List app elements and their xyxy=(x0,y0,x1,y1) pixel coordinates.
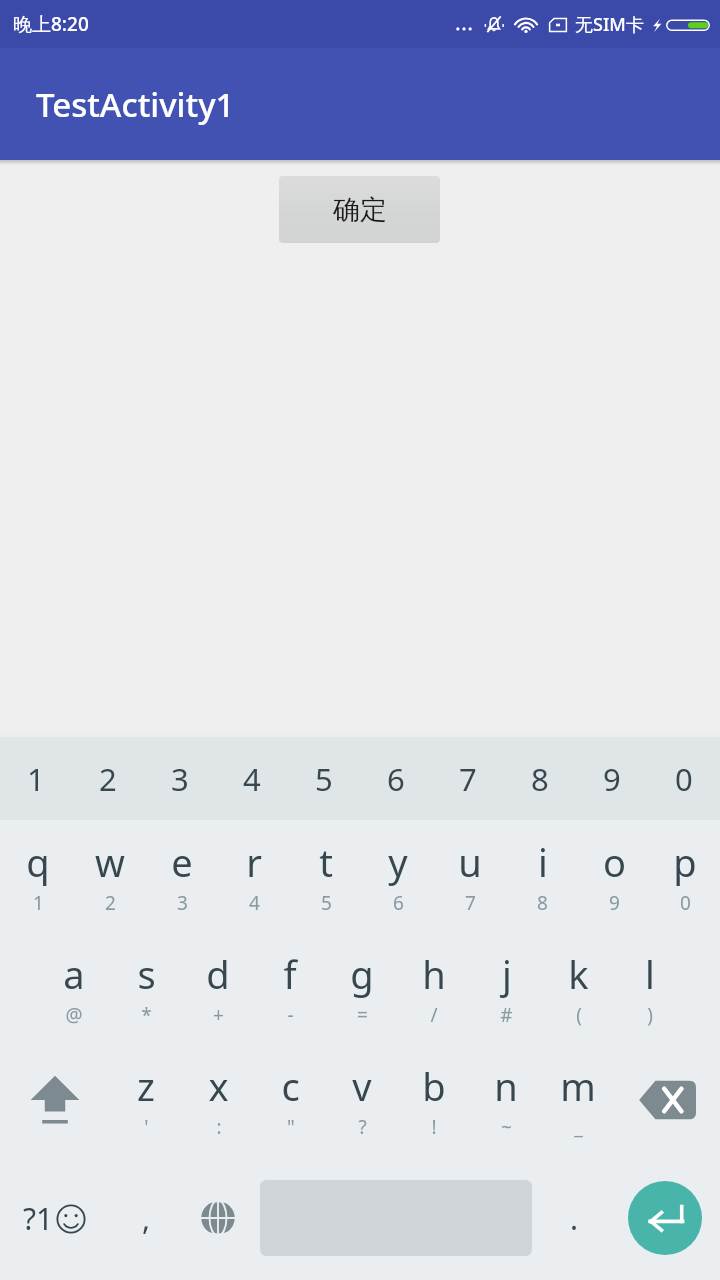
staticText: * xyxy=(141,1002,152,1028)
button[interactable]: Backspace xyxy=(614,1044,720,1156)
staticText: # xyxy=(500,1002,513,1028)
staticText: + xyxy=(213,1002,224,1028)
staticText: / xyxy=(430,1002,438,1028)
staticText: ( xyxy=(576,1002,582,1028)
button[interactable]: 9 xyxy=(576,737,648,820)
staticText: _ xyxy=(574,1114,583,1140)
button[interactable]: x xyxy=(182,1044,254,1156)
button[interactable]: 确定 xyxy=(279,176,440,243)
staticText: . xyxy=(570,1198,579,1239)
button[interactable]: , xyxy=(110,1156,182,1280)
button[interactable]: q xyxy=(2,820,74,932)
button[interactable]: w xyxy=(74,820,146,932)
button[interactable]: h xyxy=(398,932,470,1044)
button[interactable]: e xyxy=(146,820,218,932)
staticText: k xyxy=(568,948,589,1000)
button[interactable]: 1 xyxy=(0,737,72,820)
button[interactable]: a xyxy=(38,932,110,1044)
staticText: 无SIM卡 xyxy=(575,12,644,37)
button[interactable]: y xyxy=(362,820,434,932)
button[interactable]: s xyxy=(110,932,182,1044)
button[interactable]: Symbols and emoji xyxy=(0,1156,110,1280)
button[interactable]: t xyxy=(290,820,362,932)
staticText: a xyxy=(63,948,85,1000)
button[interactable]: 4 xyxy=(216,737,288,820)
staticText: 2 xyxy=(99,758,117,800)
button[interactable]: v xyxy=(326,1044,398,1156)
button[interactable]: 2 xyxy=(72,737,144,820)
staticText: d xyxy=(206,948,230,1000)
staticText: @ xyxy=(65,1002,83,1028)
button[interactable]: 0 xyxy=(648,737,720,820)
staticText: 7 xyxy=(465,890,476,916)
staticText: = xyxy=(357,1002,368,1028)
button[interactable]: b xyxy=(398,1044,470,1156)
staticText: , xyxy=(142,1198,151,1239)
staticText: u xyxy=(458,836,482,888)
button[interactable]: 6 xyxy=(360,737,432,820)
staticText: p xyxy=(673,836,697,888)
staticText: l xyxy=(645,948,655,1000)
staticText: 晚上8:20 xyxy=(13,11,89,37)
staticText: 1 xyxy=(27,758,45,800)
button[interactable]: d xyxy=(182,932,254,1044)
button[interactable]: o xyxy=(578,820,650,932)
staticText: 9 xyxy=(603,758,621,800)
staticText: 6 xyxy=(393,890,404,916)
button[interactable]: Shift xyxy=(0,1044,110,1156)
staticText: 8 xyxy=(537,890,548,916)
staticText: c xyxy=(281,1060,300,1112)
staticText: ) xyxy=(647,1002,653,1028)
button[interactable]: f xyxy=(254,932,326,1044)
staticText: ? xyxy=(358,1114,367,1140)
button[interactable]: l xyxy=(614,932,686,1044)
staticText: 5 xyxy=(315,758,333,800)
button[interactable]: n xyxy=(470,1044,542,1156)
button[interactable]: j xyxy=(470,932,542,1044)
staticText: 7 xyxy=(459,758,477,800)
staticText: x xyxy=(208,1060,229,1112)
staticText: q xyxy=(26,836,50,888)
button[interactable]: 5 xyxy=(288,737,360,820)
staticText: 1 xyxy=(33,890,44,916)
button[interactable]: . xyxy=(538,1156,610,1280)
staticText: f xyxy=(283,948,297,1000)
staticText: : xyxy=(216,1114,222,1140)
staticText: e xyxy=(171,836,193,888)
button[interactable]: 7 xyxy=(432,737,504,820)
staticText: 确定 xyxy=(333,193,387,227)
button[interactable]: r xyxy=(218,820,290,932)
staticText: " xyxy=(287,1114,295,1140)
staticText: o xyxy=(603,836,626,888)
button[interactable]: z xyxy=(110,1044,182,1156)
button[interactable]: g xyxy=(326,932,398,1044)
staticText: h xyxy=(422,948,446,1000)
staticText: 6 xyxy=(387,758,405,800)
staticText: 8 xyxy=(531,758,549,800)
staticText: ~ xyxy=(501,1114,512,1140)
button[interactable]: c xyxy=(254,1044,326,1156)
button[interactable]: p xyxy=(650,820,720,932)
button[interactable]: i xyxy=(506,820,578,932)
staticText: m xyxy=(560,1060,596,1112)
staticText: 2 xyxy=(105,890,116,916)
staticText: 4 xyxy=(249,890,260,916)
button[interactable]: k xyxy=(542,932,614,1044)
staticText: i xyxy=(538,836,548,888)
staticText: j xyxy=(502,948,512,1000)
button[interactable]: u xyxy=(434,820,506,932)
staticText: t xyxy=(319,836,333,888)
staticText: - xyxy=(287,1002,294,1028)
staticText: z xyxy=(137,1060,155,1112)
staticText: s xyxy=(137,948,156,1000)
staticText: v xyxy=(352,1060,372,1112)
button[interactable]: Change language xyxy=(182,1156,254,1280)
button[interactable]: 8 xyxy=(504,737,576,820)
button[interactable]: m xyxy=(542,1044,614,1156)
staticText: b xyxy=(422,1060,446,1112)
button[interactable]: Enter xyxy=(628,1181,702,1255)
staticText: 0 xyxy=(680,890,691,916)
button[interactable]: 3 xyxy=(144,737,216,820)
staticText: ! xyxy=(431,1114,437,1140)
